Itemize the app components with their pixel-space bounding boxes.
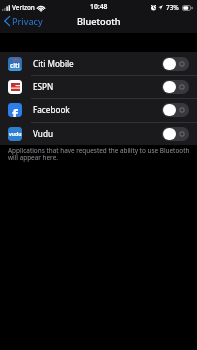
button[interactable]: citi xyxy=(0,52,197,75)
staticText: citi xyxy=(10,61,20,69)
button[interactable]: Toggle Bluetooth access xyxy=(162,57,189,71)
staticText: Applications that have requested the abi… xyxy=(8,146,193,162)
staticText: Bluetooth xyxy=(77,15,121,28)
staticText: Citi Mobile xyxy=(33,58,74,69)
staticText: ESPN xyxy=(33,81,54,92)
button[interactable]: Toggle Bluetooth access xyxy=(162,80,189,94)
staticText: Privacy xyxy=(12,15,43,28)
staticText: 73% xyxy=(166,3,179,12)
staticText: 10:48 xyxy=(90,2,108,11)
button[interactable]: Toggle Bluetooth access xyxy=(162,103,189,117)
button[interactable]: f xyxy=(0,98,197,121)
staticText: Verizon xyxy=(12,3,35,12)
staticText: f xyxy=(12,104,18,117)
button[interactable]: ESPN xyxy=(0,75,197,98)
staticText: Facebook xyxy=(33,104,70,115)
staticText: vudu xyxy=(9,131,22,138)
button[interactable]: vudu xyxy=(0,122,197,145)
button[interactable]: Toggle Bluetooth access xyxy=(162,127,189,141)
staticText: Vudu xyxy=(33,128,53,139)
button[interactable]: Privacy xyxy=(0,11,50,31)
